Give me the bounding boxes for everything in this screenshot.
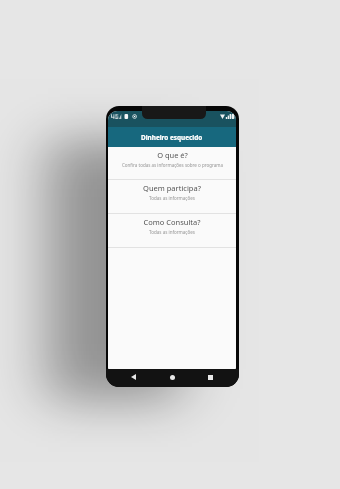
button[interactable]: Quem participa?: [108, 180, 236, 214]
staticText: Quem participa?: [143, 183, 201, 193]
staticText: Todas as informações: [149, 229, 195, 235]
staticText: O que é?: [157, 150, 188, 160]
button[interactable]: O que é?: [108, 147, 236, 180]
button[interactable]: Back: [128, 372, 138, 382]
staticText: Como Consulta?: [143, 217, 201, 227]
staticText: Dinheiro esquecido: [141, 133, 203, 142]
staticText: Todas as informações: [149, 195, 195, 201]
staticText: Confira todas as informações sobre o pro…: [122, 162, 223, 168]
button[interactable]: Como Consulta?: [108, 214, 236, 248]
button[interactable]: Recent apps: [205, 372, 215, 382]
button[interactable]: Home: [167, 372, 177, 382]
